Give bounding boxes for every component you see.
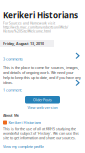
button[interactable]: 1 comment: (3, 87, 43, 93)
staticText: History%20Site/Welcome.html (3, 29, 51, 33)
button[interactable]: View web version (0, 104, 85, 110)
staticText: Kerikeri Historians (8, 120, 41, 125)
staticText: 1 comment: (3, 87, 22, 93)
staticText: ideas. (3, 80, 13, 85)
button[interactable]: 3 comments (3, 56, 43, 62)
button[interactable]: Open post (74, 78, 81, 87)
staticText: and details of ongoing work. We need you… (3, 70, 74, 75)
staticText: View web version (27, 105, 57, 110)
staticText: Kerikeri Historians (3, 9, 78, 21)
staticText: Older Posts (33, 97, 52, 102)
staticText: http://web.mac.com/tonyrobertson/iWeb/ (3, 25, 68, 29)
staticText: help to keep this up to date, and if you… (3, 75, 81, 80)
button[interactable]: Open post (74, 51, 81, 60)
staticText: This is for the use of all at KKHS study… (3, 126, 76, 131)
staticText: About Me (3, 113, 19, 118)
staticText: For Sources and Homework visit (3, 21, 55, 25)
staticText: site to get information and share our so… (3, 135, 76, 140)
staticText: 3 comments (3, 56, 23, 62)
button[interactable]: View my complete profile (3, 143, 83, 149)
button[interactable]: Kerikeri Historians (3, 119, 83, 125)
staticText: wonderful subject of 'History'. We can u… (3, 131, 79, 136)
staticText: Friday, August 13, 2010 (3, 41, 44, 46)
staticText: View my complete profile (3, 144, 44, 149)
button[interactable]: Older Posts (25, 96, 60, 103)
staticText: This is the place to come for sources, i… (3, 65, 79, 70)
